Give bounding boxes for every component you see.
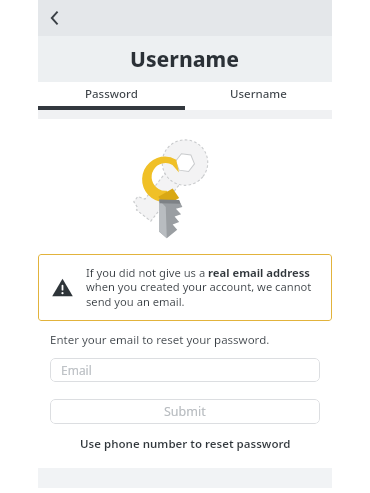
- button[interactable]: Back: [38, 1, 72, 35]
- button[interactable]: If you did not give us a real email addr…: [38, 254, 332, 321]
- button[interactable]: Email: [50, 358, 320, 382]
- button[interactable]: Submit: [50, 399, 320, 424]
- button[interactable]: Password: [38, 82, 185, 106]
- staticText: Submit: [164, 403, 206, 420]
- staticText: Email: [61, 362, 92, 378]
- staticText: Password: [85, 86, 138, 102]
- button[interactable]: Use phone number to reset password: [38, 436, 332, 452]
- staticText: Enter your email to reset your password.: [50, 332, 270, 348]
- staticText: Username: [130, 45, 240, 74]
- staticText: Username: [230, 86, 287, 102]
- staticText: Use phone number to reset password: [80, 436, 291, 452]
- staticText: If you did not give us a real email addr…: [86, 265, 320, 310]
- button[interactable]: Username: [185, 82, 332, 106]
